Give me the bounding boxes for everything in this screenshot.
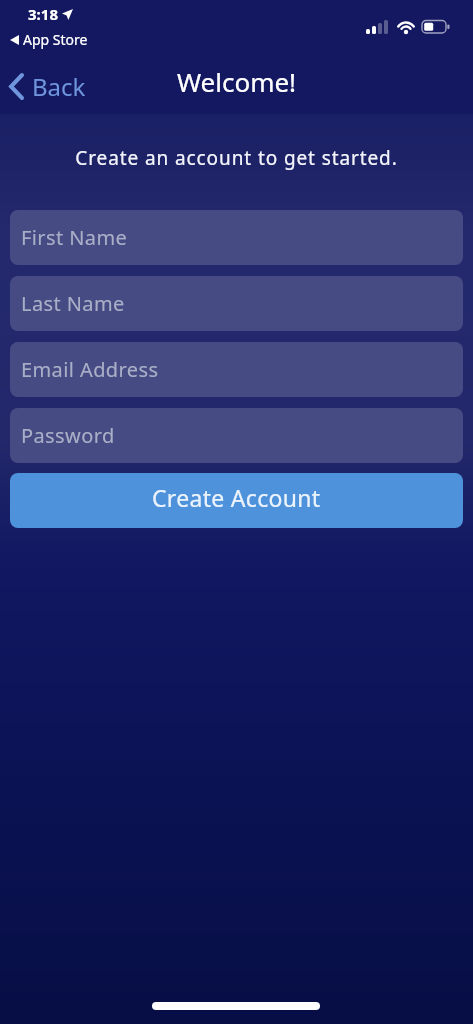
button[interactable]: Create Account <box>10 473 463 528</box>
staticText: Create Account <box>152 482 321 513</box>
staticText: Password <box>21 422 115 449</box>
button[interactable]: Back <box>8 70 86 103</box>
staticText: 3:18 <box>28 4 58 24</box>
button[interactable]: Last Name <box>10 276 463 331</box>
staticText: Welcome! <box>0 64 473 99</box>
button[interactable]: First Name <box>10 210 463 265</box>
button[interactable]: Password <box>10 408 463 463</box>
staticText: Create an account to get started. <box>0 145 473 171</box>
button[interactable]: Email Address <box>10 342 463 397</box>
staticText: Last Name <box>21 290 125 317</box>
staticText: Back <box>32 70 86 103</box>
button[interactable]: App Store <box>10 30 88 49</box>
staticText: Email Address <box>21 356 159 383</box>
staticText: First Name <box>21 224 128 251</box>
staticText: App Store <box>23 30 88 49</box>
